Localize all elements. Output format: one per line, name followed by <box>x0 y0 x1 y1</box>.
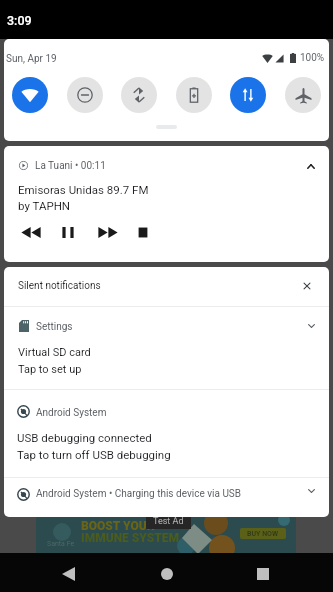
button[interactable]: Fast forward <box>98 222 118 242</box>
staticText: Virtual SD card <box>18 346 91 359</box>
staticText: BOOST YOUR <box>81 519 155 533</box>
button[interactable]: Clear all silent notifications <box>296 275 318 297</box>
staticText: Silent notifications <box>18 280 101 292</box>
button[interactable]: Home <box>153 560 180 587</box>
staticText: by TAPHN <box>18 199 71 212</box>
staticText: USB debugging connected <box>17 431 152 444</box>
staticText: BUY NOW <box>247 530 279 538</box>
button[interactable]: Pause <box>58 222 78 242</box>
button[interactable]: Back <box>55 560 82 587</box>
staticText: La Tuani • 00:11 <box>35 160 106 172</box>
button[interactable]: Auto rotate <box>121 77 157 113</box>
button[interactable]: Rewind <box>21 222 41 242</box>
button[interactable]: Stop <box>133 222 153 242</box>
staticText: Tap to turn off USB debugging <box>17 448 171 461</box>
staticText: 100% <box>300 52 325 64</box>
staticText: Test Ad <box>153 516 184 527</box>
button[interactable]: Settings <box>4 307 329 389</box>
button[interactable]: Battery saver <box>176 77 212 113</box>
button[interactable]: Android System <box>4 390 329 477</box>
staticText: Emisoras Unidas 89.7 FM <box>18 183 149 196</box>
staticText: 3:09 <box>7 13 32 28</box>
staticText: Android System • Charging this device vi… <box>36 488 242 500</box>
button[interactable]: Do not disturb <box>67 77 103 113</box>
staticText: Santa Fe <box>47 540 75 548</box>
button[interactable]: Android System • Charging this device vi… <box>4 478 329 517</box>
button[interactable]: Recent apps <box>249 560 276 587</box>
button[interactable]: Mobile data <box>230 77 266 113</box>
staticText: IMMUNE SYSTEM <box>81 531 180 545</box>
button[interactable]: Collapse <box>300 155 322 177</box>
staticText: Android System <box>36 407 107 419</box>
staticText: Sun, Apr 19 <box>6 53 57 65</box>
staticText: Tap to set up <box>18 363 82 376</box>
staticText: Settings <box>36 321 73 333</box>
button[interactable]: Airplane mode <box>285 77 321 113</box>
button[interactable]: Wi-Fi <box>12 77 48 113</box>
